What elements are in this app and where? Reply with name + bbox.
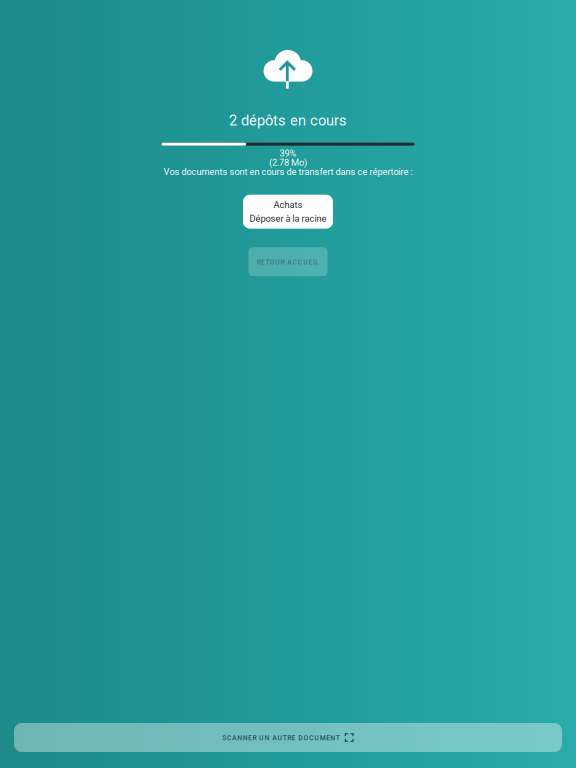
- staticText: Déposer à la racine: [249, 213, 326, 224]
- staticText: 39%: [279, 148, 296, 159]
- staticText: Vos documents sont en cours de transfert…: [163, 166, 412, 177]
- button[interactable]: RETOUR ACCUEIL: [248, 247, 327, 276]
- staticText: RETOUR ACCUEIL: [257, 257, 319, 266]
- button[interactable]: SCANNER UN AUTRE DOCUMENT: [14, 723, 562, 752]
- staticText: SCANNER UN AUTRE DOCUMENT: [222, 733, 340, 742]
- staticText: Achats: [273, 199, 302, 210]
- staticText: 2 dépôts en cours: [229, 112, 347, 129]
- staticText: (2.78 Mo): [269, 157, 307, 168]
